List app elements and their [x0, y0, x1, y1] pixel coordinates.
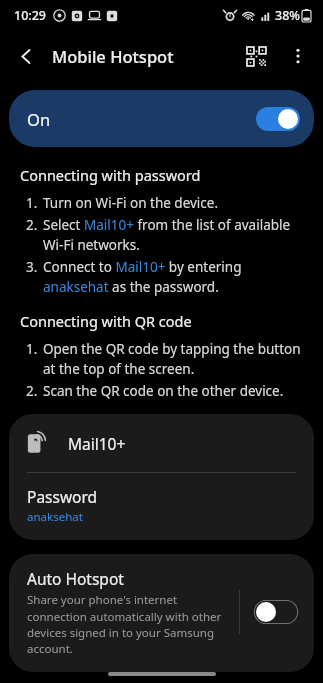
staticText: Connect to Mail10+ by entering anaksehat… [43, 258, 307, 296]
button[interactable] [254, 600, 298, 624]
staticText: Open the QR code by tapping the button a… [43, 340, 307, 378]
staticText: Connecting with QR code [20, 311, 192, 331]
staticText: 1. [26, 340, 38, 358]
staticText: Turn on Wi-Fi on the device. [43, 194, 307, 212]
staticText: Connecting with password [20, 165, 201, 185]
button[interactable]: Auto Hotspot [9, 554, 314, 672]
staticText: Password [27, 486, 98, 507]
staticText: Mobile Hotspot [52, 45, 174, 67]
button[interactable]: Show QR code [235, 35, 277, 77]
staticText: Mail10+ [68, 433, 126, 454]
staticText: On [27, 108, 51, 130]
staticText: 2. [26, 382, 38, 400]
button[interactable]: More options [277, 35, 319, 77]
staticText: Select Mail10+ from the list of availabl… [43, 216, 307, 254]
staticText: anaksehat [27, 509, 83, 525]
button[interactable]: Back [6, 36, 46, 76]
staticText: Share your phone's internet connection a… [27, 592, 224, 656]
staticText: Auto Hotspot [27, 568, 124, 589]
button[interactable] [256, 107, 300, 131]
staticText: 1. [26, 194, 38, 212]
button[interactable]: Password [9, 473, 314, 540]
staticText: 10:29 [14, 7, 47, 24]
button[interactable]: On [9, 90, 314, 147]
staticText: 38% [275, 7, 300, 24]
staticText: Scan the QR code on the other device. [43, 382, 307, 400]
staticText: 3. [26, 258, 38, 276]
staticText: 2. [26, 216, 38, 234]
button[interactable]: Mail10+ [9, 414, 314, 472]
